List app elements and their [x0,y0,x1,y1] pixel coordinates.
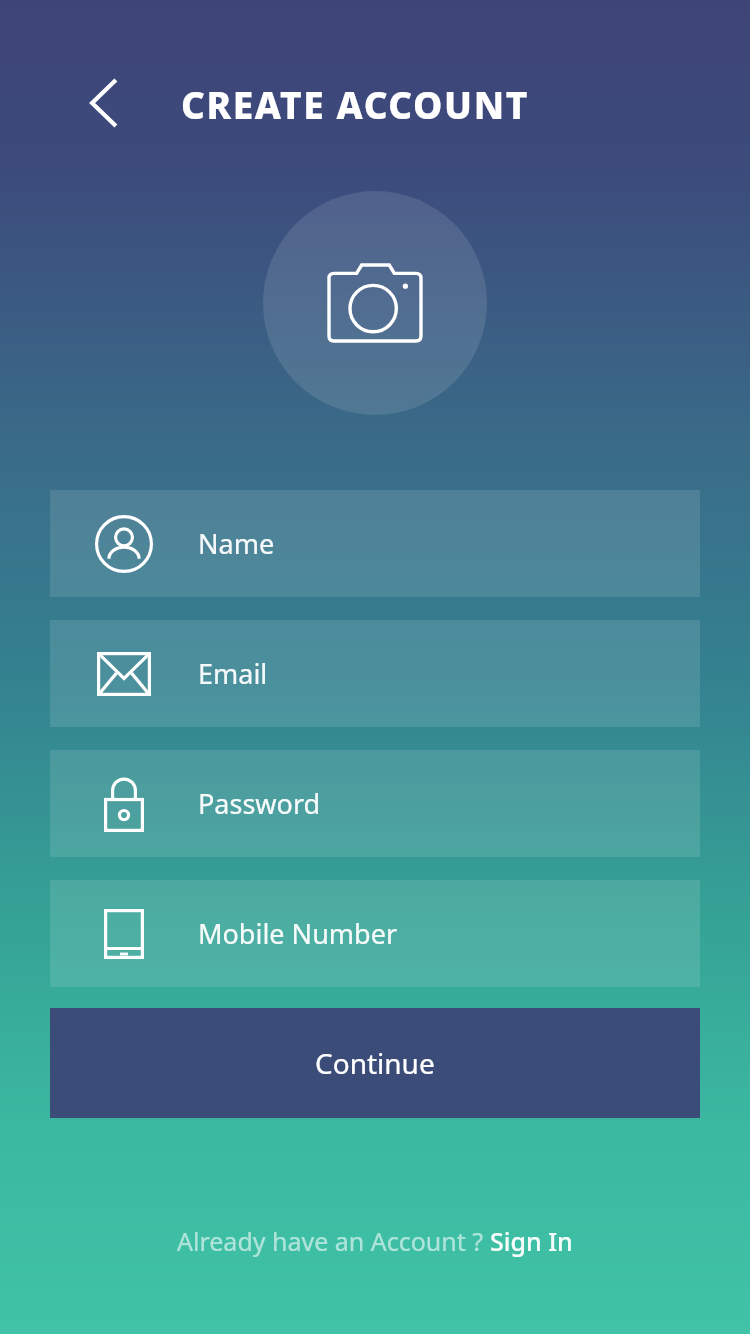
button[interactable]: Add profile photo [263,191,487,415]
staticText: Email [198,655,268,692]
button[interactable]: Already have an Account ? [0,1208,750,1274]
button[interactable]: Name [50,490,700,597]
staticText: Password [198,785,321,822]
button[interactable]: Password [50,750,700,857]
button[interactable]: Back [72,70,138,136]
staticText: Already have an Account ? [177,1224,490,1258]
staticText: CREATE ACCOUNT [181,79,529,129]
button[interactable]: Continue [50,1008,700,1118]
staticText: Continue [315,1044,435,1082]
button[interactable]: Mobile Number [50,880,700,987]
staticText: Name [198,525,275,562]
staticText: Sign In [490,1224,573,1258]
staticText: Mobile Number [198,915,398,952]
button[interactable]: Email [50,620,700,727]
